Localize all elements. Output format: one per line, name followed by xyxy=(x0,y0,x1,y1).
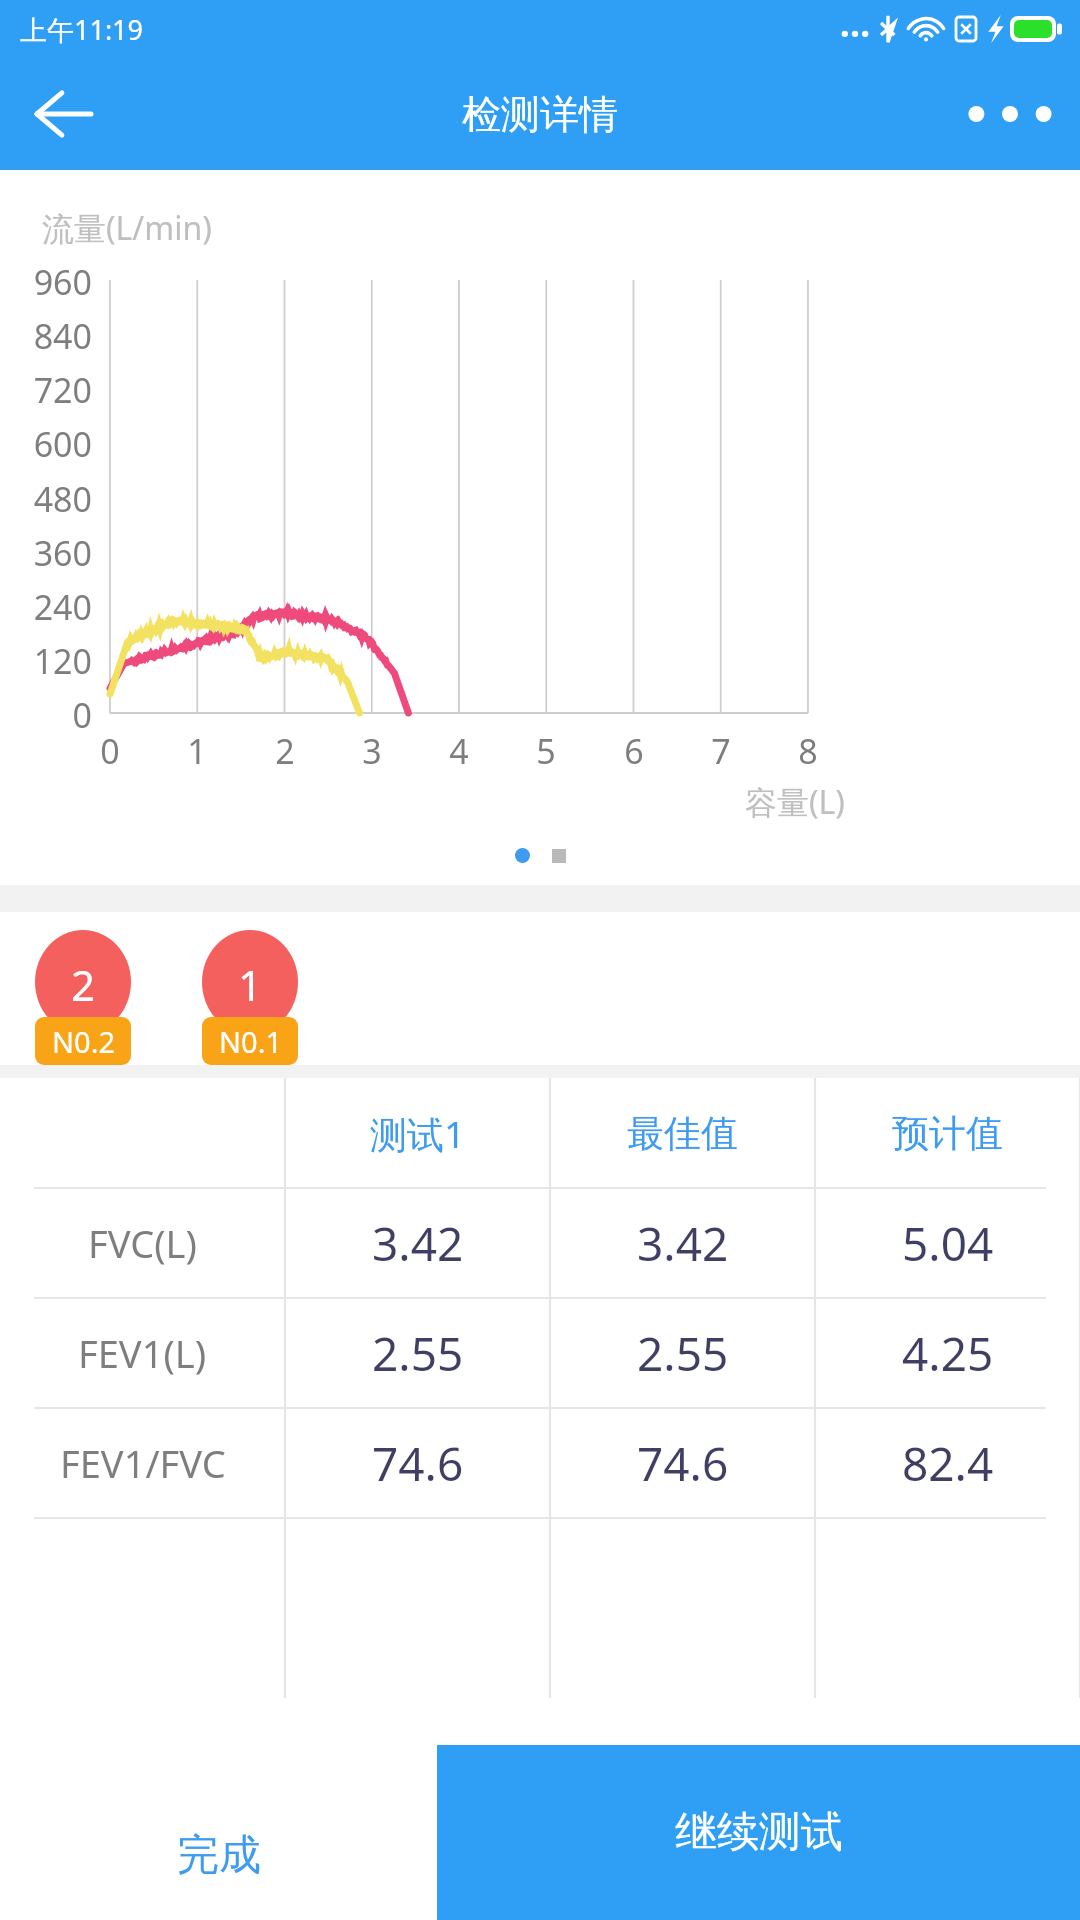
button[interactable]: More options xyxy=(940,58,1080,170)
button[interactable]: 1 xyxy=(202,930,298,1065)
staticText: 5.04 xyxy=(902,1212,994,1275)
staticText: 480 xyxy=(0,476,92,522)
staticText: 8 xyxy=(786,728,830,774)
staticText: 最佳值 xyxy=(627,1110,738,1157)
staticText: 3.42 xyxy=(372,1212,464,1275)
staticText: 6 xyxy=(612,728,656,774)
staticText: 74.6 xyxy=(372,1432,464,1495)
staticText: 4.25 xyxy=(902,1322,994,1385)
staticText: FEV1/FVC xyxy=(60,1437,226,1489)
staticText: 0 xyxy=(88,728,132,774)
staticText: 3.42 xyxy=(637,1212,729,1275)
button[interactable]: FVC(L) xyxy=(0,1188,1080,1298)
staticText: 测试1 xyxy=(370,1108,466,1159)
staticText: 4 xyxy=(437,728,481,774)
button[interactable] xyxy=(515,848,530,863)
staticText: 流量(L/min) xyxy=(42,206,212,250)
button[interactable]: 完成 xyxy=(0,1790,437,1920)
staticText: 2 xyxy=(263,728,307,774)
staticText: 容量(L) xyxy=(745,780,845,824)
button[interactable]: FEV1(L) xyxy=(0,1298,1080,1408)
staticText: 0 xyxy=(0,692,92,738)
staticText: 继续测试 xyxy=(675,1806,843,1859)
button[interactable]: 2 xyxy=(35,930,131,1065)
staticText: 2 xyxy=(71,956,96,1013)
staticText: 7 xyxy=(699,728,743,774)
button[interactable]: 测试1 xyxy=(0,1078,1080,1188)
staticText: 360 xyxy=(0,530,92,576)
button[interactable]: FEV1/FVC xyxy=(0,1408,1080,1518)
staticText: 240 xyxy=(0,584,92,630)
staticText: 5 xyxy=(524,728,568,774)
staticText: 2.55 xyxy=(372,1322,464,1385)
staticText: 840 xyxy=(0,313,92,359)
staticText: 720 xyxy=(0,367,92,413)
staticText: 3 xyxy=(350,728,394,774)
staticText: FVC(L) xyxy=(88,1217,197,1269)
staticText: 120 xyxy=(0,638,92,684)
staticText: 预计值 xyxy=(892,1110,1003,1157)
staticText: N0.2 xyxy=(52,1022,115,1061)
staticText: 1 xyxy=(238,956,263,1013)
staticText: 600 xyxy=(0,421,92,467)
staticText: 82.4 xyxy=(902,1432,994,1495)
button[interactable]: Back xyxy=(0,58,125,170)
staticText: FEV1(L) xyxy=(78,1327,207,1379)
staticText: 上午11:19 xyxy=(20,11,144,48)
staticText: 检测详情 xyxy=(462,90,618,139)
staticText: N0.1 xyxy=(219,1022,282,1061)
staticText: 2.55 xyxy=(637,1322,729,1385)
staticText: 74.6 xyxy=(637,1432,729,1495)
staticText: 1 xyxy=(175,728,219,774)
button[interactable]: 继续测试 xyxy=(437,1745,1080,1920)
staticText: 960 xyxy=(0,259,92,305)
staticText: 完成 xyxy=(177,1829,261,1882)
